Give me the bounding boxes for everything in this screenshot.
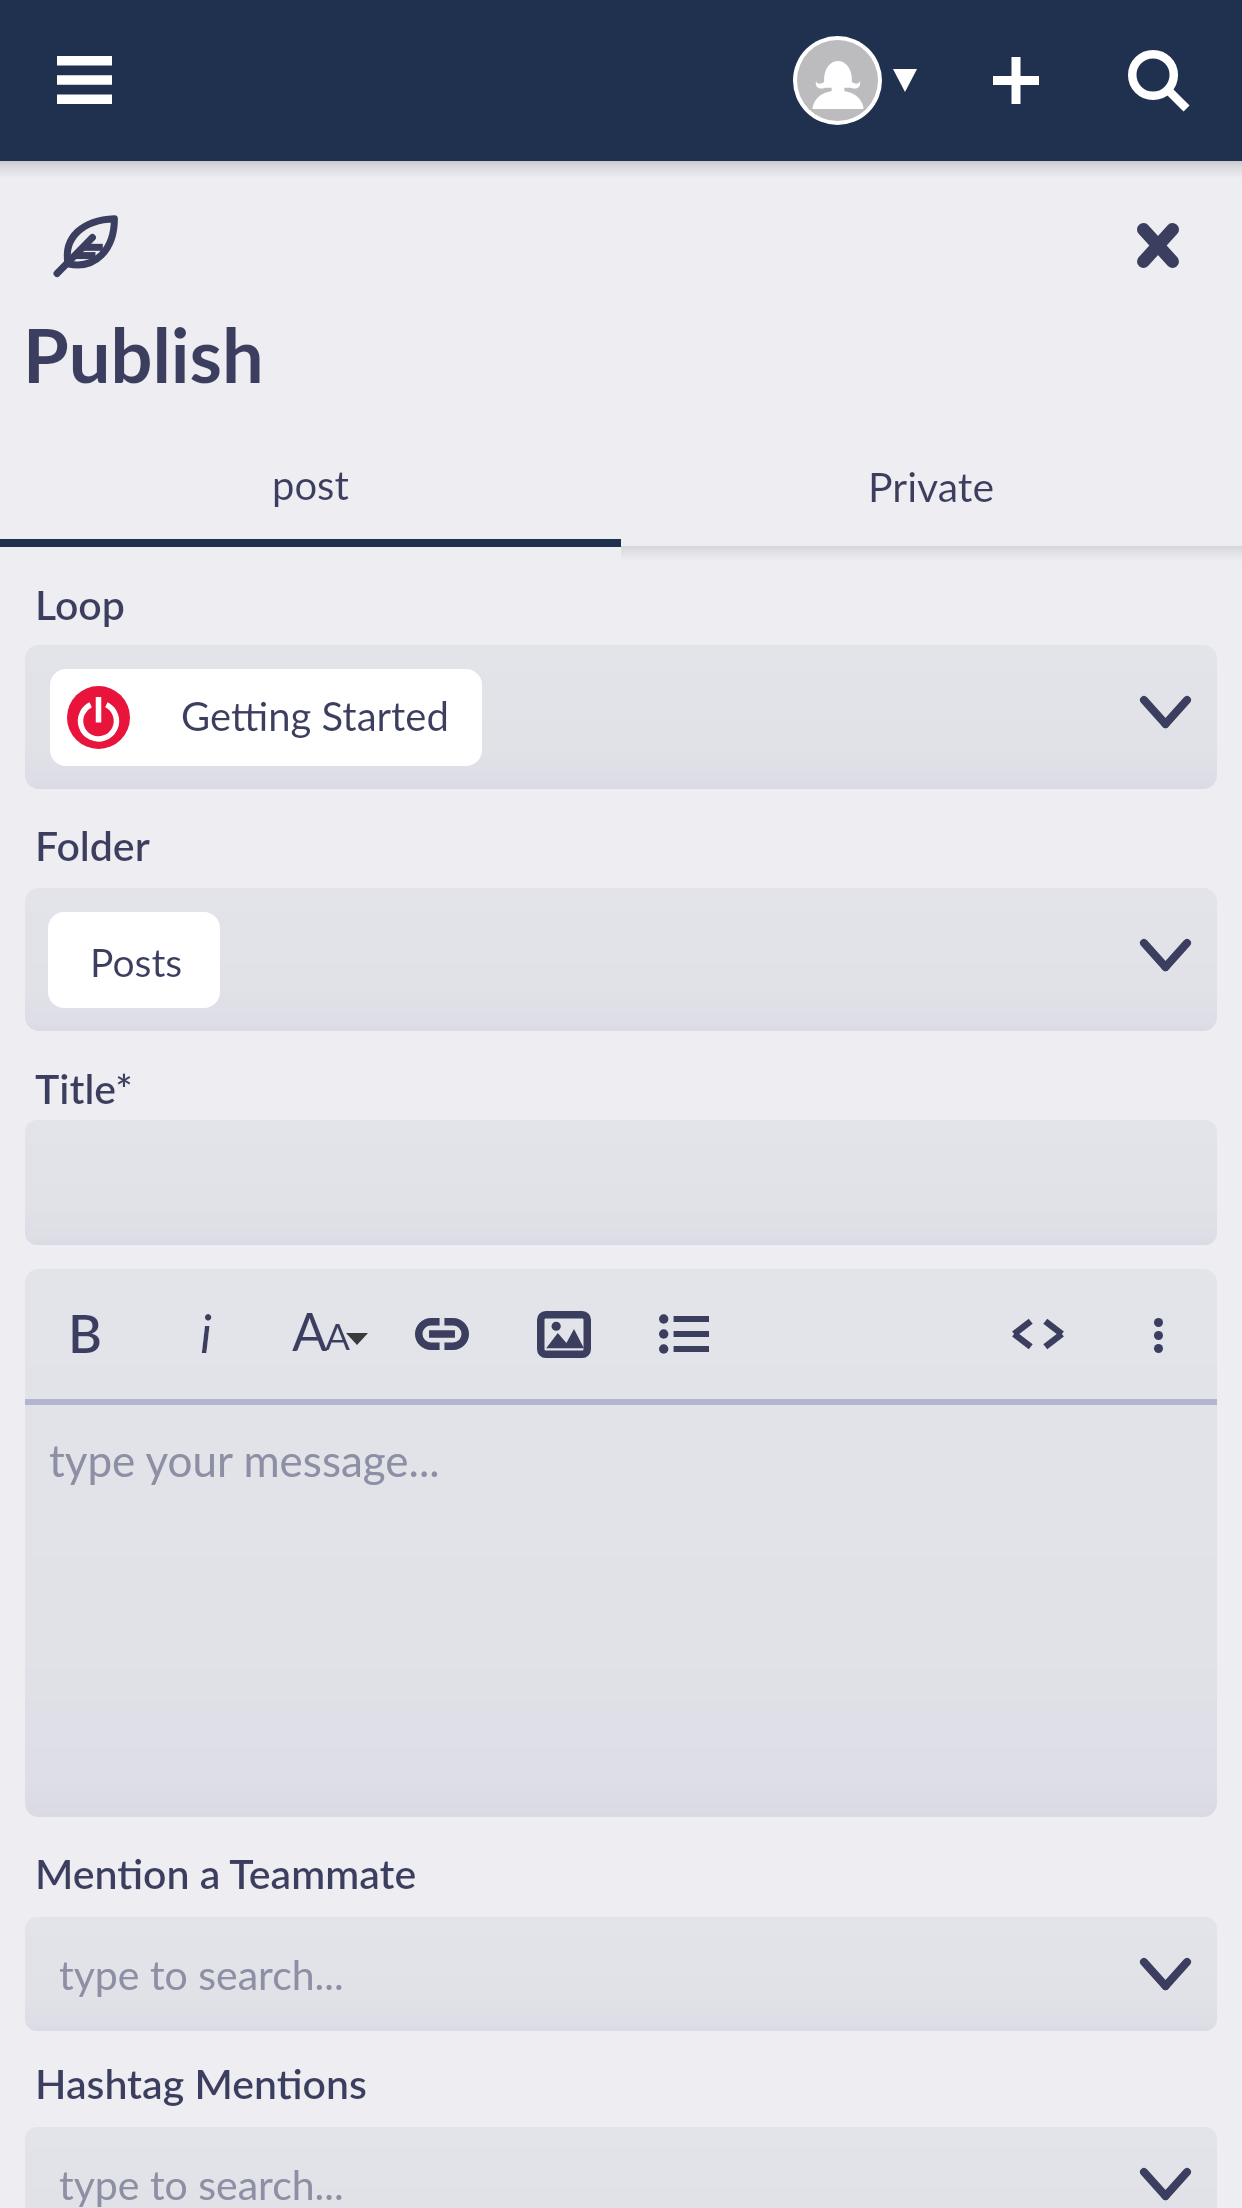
- staticText: A: [325, 1313, 351, 1357]
- button[interactable]: Image: [509, 1277, 619, 1395]
- button[interactable]: Getting Started: [50, 669, 482, 766]
- staticText: i: [200, 1302, 212, 1364]
- button[interactable]: Font size: [278, 1277, 388, 1395]
- staticText: Hashtag Mentions: [35, 2059, 367, 2108]
- button[interactable]: Code: [983, 1277, 1093, 1395]
- staticText: Loop: [35, 580, 125, 629]
- staticText: Private: [868, 462, 995, 511]
- button[interactable]: More: [1103, 1277, 1213, 1395]
- staticText: type your message...: [49, 1434, 440, 1487]
- button[interactable]: Account: [783, 26, 891, 134]
- staticText: Mention a Teammate: [35, 1849, 417, 1898]
- button[interactable]: List: [629, 1277, 739, 1395]
- staticText: A: [292, 1300, 328, 1356]
- button[interactable]: Italic: [149, 1277, 259, 1395]
- staticText: Getting Started: [181, 692, 449, 740]
- staticText: Title*: [35, 1064, 133, 1113]
- staticText: Folder: [35, 821, 150, 870]
- staticText: type to search...: [59, 2160, 344, 2208]
- button[interactable]: Close: [1108, 196, 1208, 294]
- button[interactable]: Link: [387, 1277, 497, 1395]
- staticText: B: [68, 1302, 102, 1364]
- staticText: Posts: [90, 939, 183, 986]
- button[interactable]: Add: [968, 32, 1064, 128]
- button[interactable]: Posts: [25, 888, 1217, 1031]
- button[interactable]: Compose: [34, 196, 134, 294]
- button[interactable]: type to search...: [25, 2127, 1217, 2208]
- button[interactable]: Private: [621, 430, 1242, 546]
- button[interactable]: type to search...: [25, 1917, 1217, 2031]
- button[interactable]: Posts: [48, 912, 220, 1008]
- button[interactable]: Search: [1110, 32, 1206, 128]
- button[interactable]: Menu: [36, 39, 132, 121]
- staticText: type to search...: [59, 1950, 344, 1999]
- staticText: Publish: [23, 310, 264, 399]
- button[interactable]: post: [0, 430, 621, 546]
- button[interactable]: type your message...: [25, 1405, 1217, 1817]
- staticText: post: [272, 461, 349, 509]
- button[interactable]: Bold: [30, 1277, 140, 1395]
- button[interactable]: Getting Started: [25, 645, 1217, 789]
